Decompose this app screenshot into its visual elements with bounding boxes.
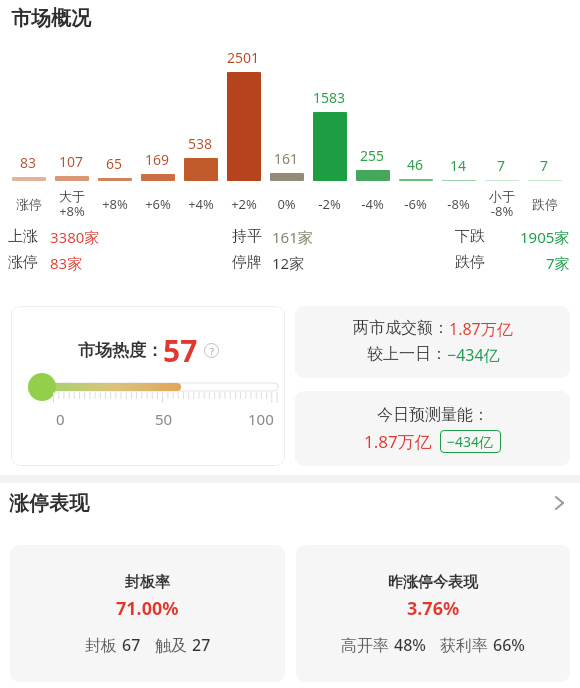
staticText: 较上一日： (367, 344, 447, 364)
staticText: 昨涨停今表现 (388, 573, 478, 592)
staticText: +8% (102, 195, 128, 213)
staticText: ? (210, 345, 214, 357)
staticText: 7家 (546, 253, 570, 273)
staticText: 255 (360, 146, 385, 165)
staticText: 下跌 (455, 227, 485, 246)
staticText: -4% (361, 195, 384, 213)
staticText: 50 (155, 409, 173, 429)
staticText: 100 (248, 409, 274, 429)
staticText: 上涨 (8, 227, 38, 246)
staticText: 83家 (50, 253, 83, 273)
staticText: 大于 +8% (59, 188, 85, 220)
staticText: 161家 (272, 227, 313, 247)
staticText: +2% (231, 195, 257, 213)
staticText: 获利率 (440, 634, 493, 656)
staticText: 2501 (227, 48, 260, 67)
staticText: 封板 (85, 634, 122, 656)
staticText: +6% (145, 195, 171, 213)
staticText: 跌停 (455, 253, 485, 272)
staticText: -2% (318, 195, 341, 213)
button[interactable]: 封板率 (10, 545, 285, 682)
button[interactable]: 涨停表现 (0, 489, 580, 517)
staticText: 3.76% (407, 596, 460, 621)
staticText: 触及 (155, 634, 192, 656)
staticText: 12家 (272, 253, 305, 273)
staticText: 涨停 (16, 196, 42, 212)
staticText: 27 (192, 634, 211, 656)
staticText: 今日预测量能： (377, 405, 489, 425)
staticText: 市场热度： (78, 340, 163, 361)
button[interactable]: 今日预测量能： (295, 391, 570, 466)
staticText: -6% (404, 195, 427, 213)
staticText: 1905家 (520, 227, 570, 247)
staticText: 107 (59, 152, 84, 171)
staticText: 14 (450, 156, 467, 175)
staticText: 1583 (313, 88, 346, 107)
staticText: -8% (447, 195, 470, 213)
staticText: 161 (274, 149, 299, 168)
staticText: 65 (106, 154, 123, 173)
staticText: 1.87万亿 (449, 318, 513, 340)
button[interactable]: 昨涨停今表现 (296, 545, 570, 682)
button[interactable]: 两市成交额： (295, 306, 570, 378)
staticText: 高开率 (341, 634, 394, 656)
staticText: 封板率 (125, 573, 170, 592)
staticText: 48% (394, 634, 426, 656)
staticText: 538 (188, 134, 213, 153)
staticText: 小于 -8% (489, 188, 515, 220)
staticText: 7 (540, 156, 549, 175)
staticText: 46 (407, 155, 424, 174)
staticText: 涨停表现 (9, 491, 89, 516)
staticText: +4% (188, 195, 214, 213)
staticText: 57 (163, 330, 198, 371)
staticText: −434亿 (447, 432, 494, 451)
staticText: 0% (277, 195, 296, 213)
button[interactable]: 市场热度： (11, 306, 285, 466)
staticText: 两市成交额： (353, 318, 449, 338)
staticText: 67 (122, 634, 141, 656)
staticText: 7 (497, 156, 506, 175)
staticText: 3380家 (50, 227, 100, 247)
staticText: 66% (493, 634, 525, 656)
staticText: 跌停 (532, 196, 558, 212)
staticText: −434亿 (447, 344, 500, 366)
staticText: 169 (145, 150, 170, 169)
staticText: 0 (56, 409, 65, 429)
staticText: 1.87万亿 (364, 430, 432, 453)
staticText: 停牌 (232, 253, 262, 272)
staticText: 71.00% (116, 596, 179, 621)
staticText: 市场概况 (11, 6, 91, 31)
staticText: 持平 (232, 227, 262, 246)
staticText: 83 (20, 153, 37, 172)
staticText: 涨停 (8, 253, 38, 272)
